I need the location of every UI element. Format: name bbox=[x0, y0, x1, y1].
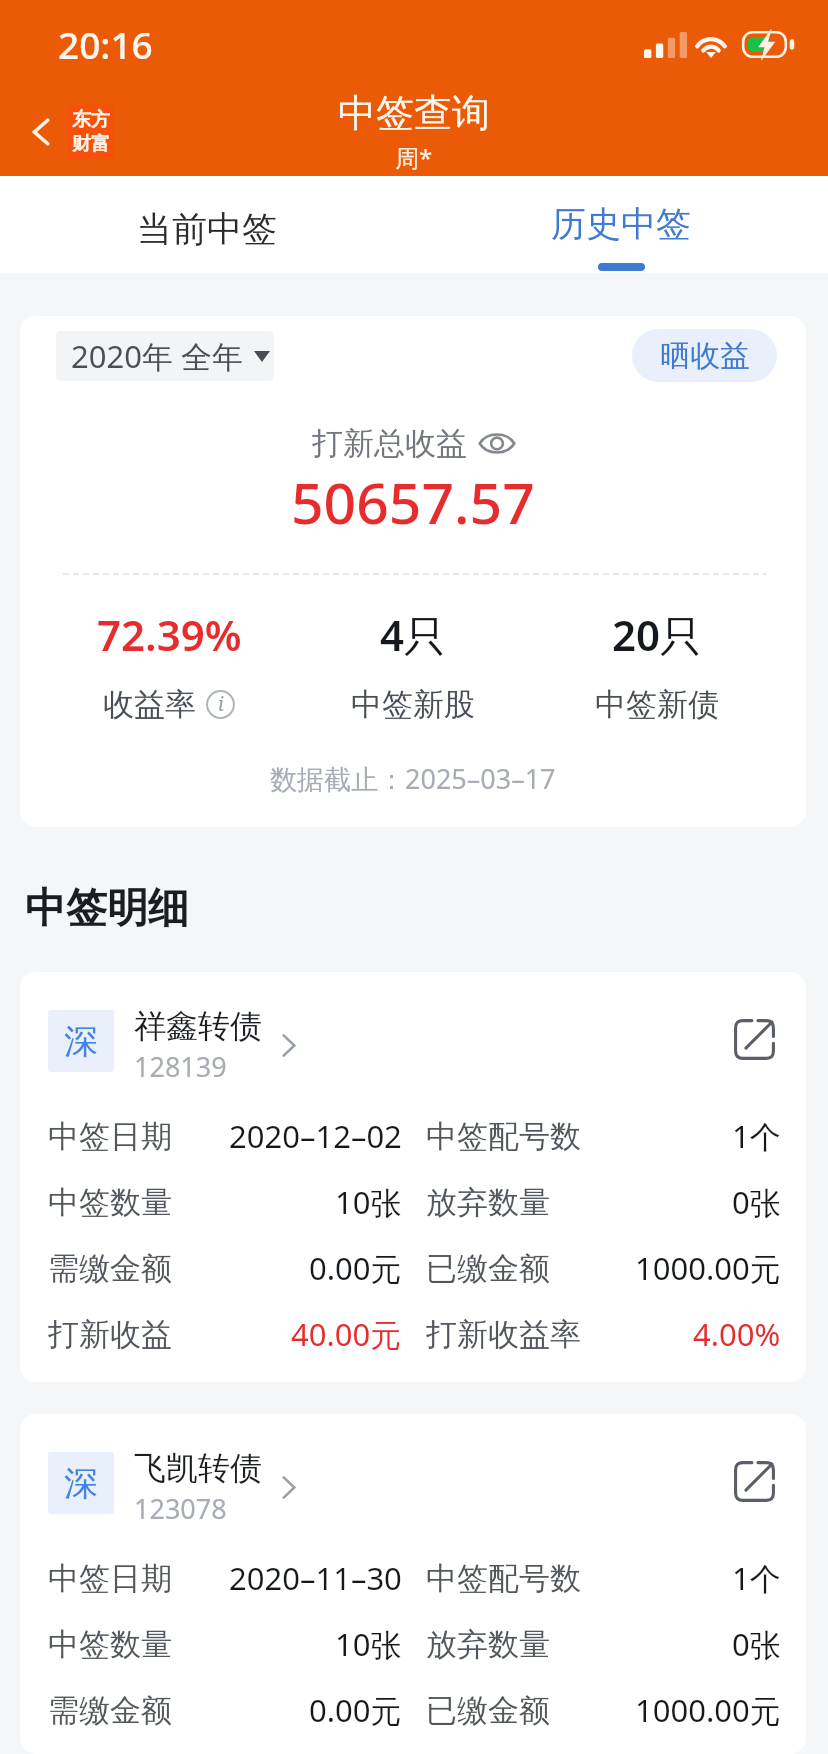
staticText: 2020–11–30 bbox=[229, 1557, 402, 1599]
staticText: 财富 bbox=[72, 132, 110, 156]
staticText: 4只 bbox=[380, 606, 447, 663]
staticText: 0张 bbox=[732, 1181, 781, 1223]
staticText: 40.00元 bbox=[291, 1313, 402, 1355]
staticText: 深 bbox=[64, 1462, 98, 1505]
staticText: 已缴金额 bbox=[426, 1691, 550, 1730]
staticText: 数据截止：2025–03–17 bbox=[270, 760, 556, 797]
staticText: 1个 bbox=[732, 1115, 781, 1157]
staticText: 需缴金额 bbox=[48, 1249, 172, 1288]
staticText: 中签明细 bbox=[25, 883, 189, 935]
staticText: 历史中签 bbox=[551, 202, 691, 246]
button[interactable]: 2020年 全年 bbox=[56, 331, 274, 381]
staticText: 20只 bbox=[612, 606, 703, 663]
staticText: 128139 bbox=[134, 1048, 227, 1085]
staticText: 中签查询 bbox=[338, 89, 490, 137]
staticText: 东方 bbox=[72, 108, 110, 132]
button[interactable]: Open in new page bbox=[727, 1454, 781, 1508]
staticText: 已缴金额 bbox=[426, 1249, 550, 1288]
staticText: 2020–12–02 bbox=[229, 1115, 402, 1157]
staticText: 深 bbox=[64, 1020, 98, 1063]
button[interactable]: 历史中签 bbox=[414, 176, 828, 273]
staticText: 50657.57 bbox=[291, 463, 535, 541]
staticText: 2020年 全年 bbox=[71, 335, 243, 377]
staticText: 晒收益 bbox=[660, 337, 750, 375]
staticText: 收益率 bbox=[103, 685, 196, 724]
staticText: 20:16 bbox=[58, 19, 153, 69]
staticText: 中签日期 bbox=[48, 1559, 172, 1598]
staticText: 10张 bbox=[335, 1623, 402, 1665]
staticText: 1000.00元 bbox=[635, 1247, 781, 1289]
staticText: 0.00元 bbox=[309, 1689, 402, 1731]
staticText: 中签新股 bbox=[351, 685, 475, 724]
staticText: 打新收益率 bbox=[426, 1315, 581, 1354]
button[interactable]: Open in new page bbox=[727, 1012, 781, 1066]
staticText: 0.00元 bbox=[309, 1247, 402, 1289]
staticText: 放弃数量 bbox=[426, 1183, 550, 1222]
staticText: 10张 bbox=[335, 1181, 402, 1223]
button[interactable]: 深 bbox=[20, 1414, 806, 1754]
staticText: 打新总收益 bbox=[312, 424, 467, 463]
button[interactable]: 当前中签 bbox=[0, 176, 414, 273]
staticText: 1000.00元 bbox=[635, 1689, 781, 1731]
staticText: 中签数量 bbox=[48, 1183, 172, 1222]
staticText: 1个 bbox=[732, 1557, 781, 1599]
staticText: 当前中签 bbox=[137, 207, 277, 251]
staticText: 中签数量 bbox=[48, 1625, 172, 1664]
staticText: 祥鑫转债 bbox=[134, 1006, 262, 1046]
staticText: 打新收益 bbox=[48, 1315, 172, 1354]
staticText: 中签配号数 bbox=[426, 1559, 581, 1598]
staticText: 中签配号数 bbox=[426, 1117, 581, 1156]
staticText: 飞凯转债 bbox=[134, 1448, 262, 1488]
button[interactable]: 深 bbox=[20, 972, 806, 1382]
staticText: 123078 bbox=[134, 1490, 227, 1527]
staticText: 中签日期 bbox=[48, 1117, 172, 1156]
staticText: 4.00% bbox=[693, 1313, 781, 1355]
staticText: 放弃数量 bbox=[426, 1625, 550, 1664]
button[interactable]: 晒收益 bbox=[632, 329, 777, 382]
staticText: i bbox=[218, 691, 224, 717]
button[interactable]: Back to East Money bbox=[14, 105, 114, 159]
staticText: 周* bbox=[395, 141, 433, 174]
staticText: 0张 bbox=[732, 1623, 781, 1665]
staticText: 中签新债 bbox=[595, 685, 719, 724]
staticText: 72.39% bbox=[97, 606, 242, 663]
staticText: 需缴金额 bbox=[48, 1691, 172, 1730]
